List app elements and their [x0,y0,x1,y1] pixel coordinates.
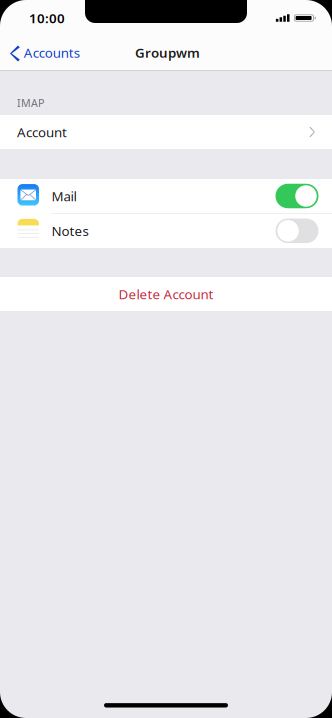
staticText: Accounts [24,44,80,61]
button[interactable]: Mail [0,179,332,213]
button[interactable]: Account [0,115,332,149]
staticText: IMAP [17,96,44,110]
button[interactable]: Accounts [0,36,88,70]
staticText: Delete Account [118,285,213,303]
button[interactable]: Delete Account [0,277,332,311]
staticText: Notes [51,222,88,240]
staticText: Mail [51,187,76,205]
staticText: 10:00 [29,9,65,27]
staticText: Account [17,123,67,141]
button[interactable]: Notes [0,214,332,248]
staticText: Groupwm [135,44,200,61]
